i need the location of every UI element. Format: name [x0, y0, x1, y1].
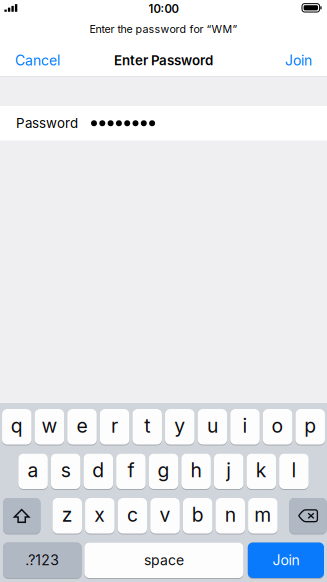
button[interactable]: s	[51, 453, 80, 490]
staticText: d	[92, 459, 104, 482]
staticText: g	[157, 459, 169, 482]
button[interactable]: w	[35, 409, 64, 445]
staticText: b	[192, 503, 204, 526]
staticText: a	[28, 459, 39, 482]
staticText: m	[254, 503, 271, 526]
button[interactable]: d	[83, 453, 113, 490]
staticText: p	[304, 414, 316, 437]
staticText: i	[242, 414, 247, 437]
button[interactable]: Join	[248, 542, 324, 579]
staticText: r	[111, 414, 118, 437]
staticText: 10:00	[148, 2, 178, 16]
button[interactable]: Delete	[289, 498, 327, 534]
staticText: v	[159, 503, 170, 526]
button[interactable]: .?123	[3, 542, 82, 579]
staticText: o	[272, 414, 284, 437]
staticText: u	[207, 414, 218, 437]
staticText: w	[41, 414, 57, 437]
button[interactable]: e	[67, 409, 97, 445]
button[interactable]: l	[279, 453, 309, 490]
staticText: Join	[285, 52, 312, 69]
button[interactable]: g	[149, 453, 178, 490]
staticText: x	[94, 503, 105, 526]
button[interactable]: m	[248, 498, 278, 534]
staticText: l	[291, 459, 296, 482]
button[interactable]: space	[84, 542, 243, 579]
staticText: s	[61, 459, 71, 482]
button[interactable]: n	[215, 498, 245, 534]
button[interactable]: h	[181, 453, 211, 490]
staticText: h	[191, 459, 202, 482]
button[interactable]: z	[52, 498, 82, 534]
button[interactable]: u	[198, 409, 227, 445]
staticText: Join	[272, 552, 299, 569]
staticText: c	[127, 503, 138, 526]
staticText: Cancel	[15, 52, 60, 69]
button[interactable]: f	[116, 453, 146, 490]
button[interactable]: k	[246, 453, 276, 490]
button[interactable]: v	[150, 498, 180, 534]
button[interactable]: r	[100, 409, 129, 445]
button[interactable]: x	[85, 498, 115, 534]
button[interactable]: Password	[0, 106, 327, 140]
button[interactable]: Shift	[3, 498, 40, 534]
button[interactable]: i	[230, 409, 260, 445]
staticText: Password	[16, 115, 78, 131]
button[interactable]: t	[132, 409, 162, 445]
staticText: .?123	[25, 552, 59, 569]
button[interactable]: q	[2, 409, 32, 445]
button[interactable]: j	[214, 453, 243, 490]
staticText: e	[76, 414, 87, 437]
staticText: z	[62, 503, 73, 526]
staticText: j	[226, 459, 231, 482]
staticText: space	[144, 552, 184, 569]
button[interactable]: o	[263, 409, 292, 445]
button[interactable]: b	[183, 498, 212, 534]
button[interactable]: Join	[279, 41, 318, 76]
button[interactable]: p	[295, 409, 325, 445]
staticText: n	[225, 503, 236, 526]
button[interactable]: a	[18, 453, 48, 490]
staticText: Enter Password	[114, 52, 213, 68]
staticText: t	[144, 414, 150, 437]
button[interactable]: Cancel	[9, 41, 66, 76]
staticText: k	[256, 459, 267, 482]
staticText: Enter the password for “WM”	[89, 22, 237, 35]
staticText: y	[174, 414, 185, 437]
button[interactable]: c	[118, 498, 147, 534]
staticText: f	[127, 459, 134, 482]
button[interactable]: y	[165, 409, 195, 445]
staticText: q	[11, 414, 23, 437]
